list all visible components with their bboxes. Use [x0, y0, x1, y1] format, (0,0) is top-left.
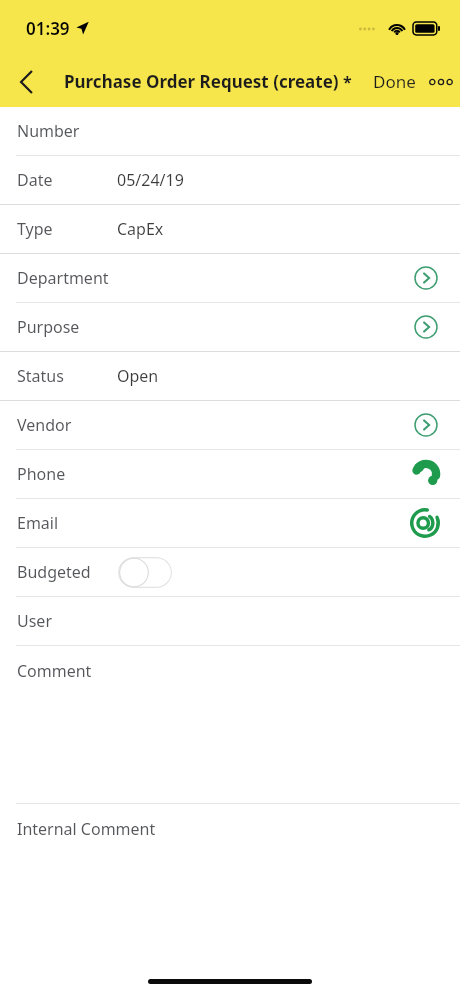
staticText: User	[17, 610, 52, 632]
button[interactable]: Send email	[0, 499, 460, 547]
staticText: Open	[117, 365, 159, 387]
staticText: Email	[17, 512, 59, 534]
button[interactable]: More options	[422, 56, 460, 107]
staticText: 05/24/19	[117, 169, 184, 191]
staticText: 01:39	[26, 17, 70, 40]
button[interactable]: Date	[0, 156, 460, 204]
staticText: Internal Comment	[17, 818, 156, 840]
button[interactable]: Status	[0, 352, 460, 400]
button[interactable]: Number	[0, 107, 460, 155]
staticText: Vendor	[17, 414, 72, 436]
button[interactable]: Select vendor	[0, 401, 460, 449]
button[interactable]: Select purpose	[0, 303, 460, 351]
staticText: Comment	[17, 660, 92, 682]
button[interactable]: Call phone	[0, 450, 460, 498]
button[interactable]: User	[0, 597, 460, 645]
staticText: Done	[373, 70, 416, 93]
button[interactable]: Comment	[0, 646, 460, 803]
button[interactable]: Select department	[0, 254, 460, 302]
button[interactable]: Back	[0, 56, 52, 107]
button[interactable]: Type	[0, 205, 460, 253]
staticText: *	[343, 71, 352, 93]
button[interactable]: Internal Comment	[0, 804, 460, 924]
staticText: Phone	[17, 463, 66, 485]
staticText: CapEx	[117, 218, 164, 240]
staticText: Budgeted	[17, 561, 91, 583]
button[interactable]: Budgeted off	[118, 557, 172, 588]
staticText: Date	[17, 169, 53, 191]
staticText: Number	[17, 120, 80, 142]
button[interactable]: Budgeted toggle	[0, 548, 460, 596]
staticText: Purpose	[17, 316, 80, 338]
staticText: Type	[17, 218, 53, 240]
staticText: Department	[17, 267, 109, 289]
button[interactable]: Done	[367, 56, 422, 107]
staticText: Purchase Order Request (create)	[64, 70, 339, 93]
staticText: Status	[17, 365, 64, 387]
